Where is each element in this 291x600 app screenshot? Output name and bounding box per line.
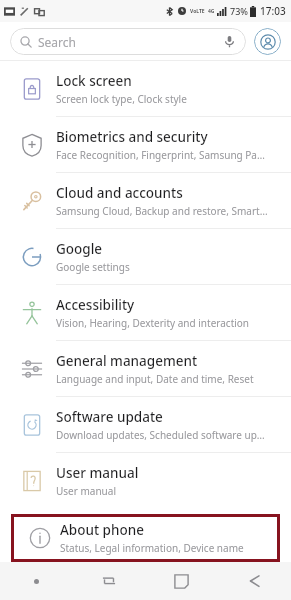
button[interactable]: Back xyxy=(218,562,291,600)
staticText: User manual xyxy=(56,484,116,498)
staticText: Samsung Cloud, Backup and restore, Smart… xyxy=(56,204,268,218)
staticText: Status, Legal information, Device name xyxy=(60,541,244,555)
button[interactable]: Lock screen xyxy=(0,61,291,116)
staticText: Download updates, Scheduled software up… xyxy=(56,428,265,442)
button[interactable]: Account xyxy=(254,28,281,55)
staticText: Search xyxy=(38,34,76,50)
staticText: Language and input, Date and time, Reset xyxy=(56,372,254,386)
staticText: Google xyxy=(56,240,103,258)
staticText: User manual xyxy=(56,464,139,482)
staticText: 4G xyxy=(208,8,215,15)
staticText: VoLTE xyxy=(190,8,205,15)
button[interactable]: Menu dot xyxy=(0,562,72,600)
staticText: Accessibility xyxy=(56,296,135,314)
staticText: Biometrics and security xyxy=(56,128,208,146)
staticText: Face Recognition, Fingerprint, Samsung P… xyxy=(56,148,265,162)
staticText: Google settings xyxy=(56,260,130,274)
button[interactable]: Search xyxy=(10,28,246,55)
staticText: Cloud and accounts xyxy=(56,184,183,202)
button[interactable]: Home xyxy=(145,562,218,600)
button[interactable]: Software update xyxy=(0,397,291,452)
staticText: Lock screen xyxy=(56,72,132,90)
staticText: Vision, Hearing, Dexterity and interacti… xyxy=(56,316,250,330)
staticText: 17:03 xyxy=(260,4,286,18)
button[interactable]: Biometrics and security xyxy=(0,117,291,172)
button[interactable]: Google xyxy=(0,229,291,284)
button[interactable]: General management xyxy=(0,341,291,396)
button[interactable]: Cloud and accounts xyxy=(0,173,291,228)
staticText: General management xyxy=(56,352,198,370)
button[interactable]: Recents xyxy=(72,562,145,600)
staticText: 73% xyxy=(230,5,248,17)
button[interactable]: About phone xyxy=(14,517,277,559)
button[interactable]: Accessibility xyxy=(0,285,291,340)
staticText: Software update xyxy=(56,408,163,426)
staticText: Screen lock type, Clock style xyxy=(56,92,187,106)
button[interactable]: User manual xyxy=(0,453,291,508)
staticText: About phone xyxy=(60,521,144,539)
